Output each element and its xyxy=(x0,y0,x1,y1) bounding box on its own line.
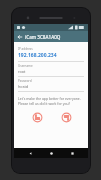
button[interactable]: Username xyxy=(18,62,84,77)
button[interactable]: Password xyxy=(18,77,84,92)
staticText: IP address xyxy=(18,47,33,51)
button[interactable]: Back xyxy=(14,31,25,42)
staticText: iCam 3C8A1A0Q xyxy=(25,34,61,40)
staticText: 192.168.200.234 xyxy=(18,52,57,59)
button[interactable]: IP address xyxy=(18,45,84,62)
staticText: hostd xyxy=(18,84,29,89)
staticText: Password xyxy=(18,79,32,83)
button[interactable]: Back xyxy=(25,148,35,158)
staticText: root xyxy=(18,69,26,74)
staticText: Let's make the app better for everyone. … xyxy=(18,96,81,106)
button[interactable]: Yes it worked xyxy=(32,112,43,123)
button[interactable]: Recent apps xyxy=(67,148,77,158)
button[interactable]: No it did not work xyxy=(61,112,72,123)
staticText: Username xyxy=(18,64,33,68)
button[interactable]: Home xyxy=(46,148,56,158)
